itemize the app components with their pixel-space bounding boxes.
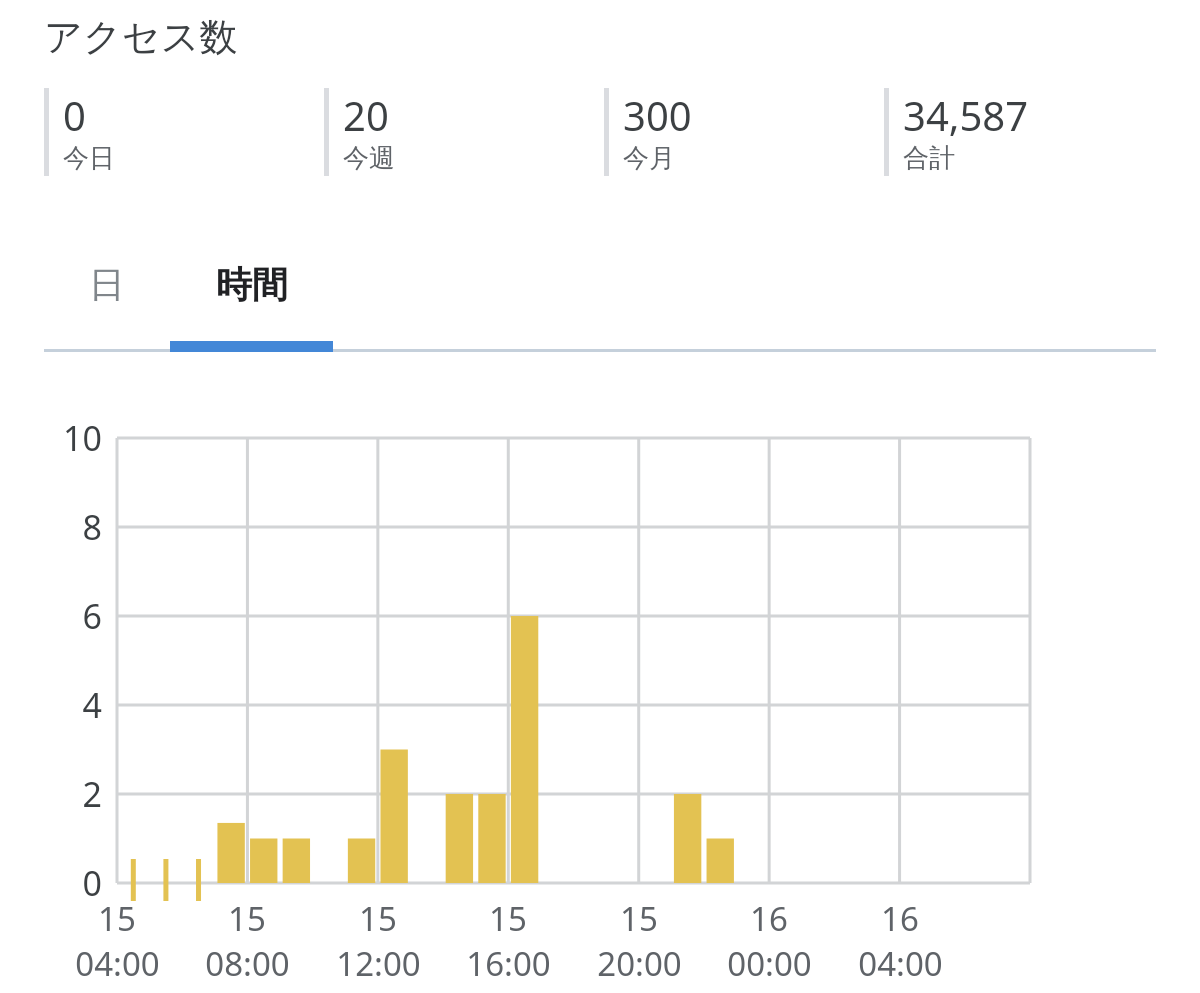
staticText: 16 <box>750 896 788 941</box>
staticText: 0 <box>82 860 102 906</box>
staticText: 12:00 <box>336 941 421 986</box>
staticText: 08:00 <box>205 941 290 986</box>
staticText: 10 <box>63 415 102 461</box>
staticText: 20:00 <box>597 941 682 986</box>
staticText: 2 <box>82 771 102 817</box>
staticText: 今月 <box>623 142 675 175</box>
staticText: 8 <box>82 504 102 550</box>
staticText: 34,587 <box>903 88 1029 142</box>
staticText: アクセス数 <box>44 13 238 61</box>
staticText: 15 <box>359 896 397 941</box>
staticText: 4 <box>82 682 102 728</box>
staticText: 6 <box>82 593 102 639</box>
button[interactable]: 0 <box>44 88 309 176</box>
staticText: 04:00 <box>75 941 160 986</box>
staticText: 今週 <box>343 142 395 175</box>
button[interactable]: 時間 <box>170 262 333 350</box>
staticText: 16:00 <box>466 941 551 986</box>
staticText: 日 <box>89 262 125 307</box>
staticText: 15 <box>228 896 266 941</box>
staticText: 04:00 <box>858 941 943 986</box>
staticText: 15 <box>620 896 658 941</box>
staticText: 00:00 <box>727 941 812 986</box>
staticText: 時間 <box>216 262 288 307</box>
staticText: 20 <box>343 88 389 142</box>
staticText: 今日 <box>63 142 115 175</box>
staticText: 15 <box>98 896 136 941</box>
staticText: 300 <box>623 88 692 142</box>
staticText: 15 <box>489 896 527 941</box>
button[interactable]: 20 <box>324 88 589 176</box>
button[interactable]: 300 <box>604 88 869 176</box>
button[interactable]: 日 <box>44 262 170 350</box>
staticText: 合計 <box>903 142 955 175</box>
staticText: 0 <box>63 88 86 142</box>
staticText: 16 <box>881 896 919 941</box>
button[interactable]: 34,587 <box>884 88 1149 176</box>
